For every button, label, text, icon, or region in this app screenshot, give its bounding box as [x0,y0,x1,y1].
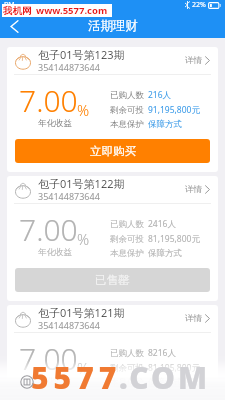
button[interactable]: 详情 [185,313,210,324]
staticText: 5577 [31,357,122,398]
button[interactable]: Back [0,14,28,38]
staticText: 保障方式 [148,248,182,259]
staticText: 我机网 [3,5,32,17]
staticText: 剩余可投 [110,234,144,245]
staticText: 354144873644 [38,61,100,73]
staticText: 包子01号第123期 [38,47,125,62]
staticText: 年化收益 [38,376,72,387]
button[interactable]: 包子01号第122期 [7,176,218,301]
staticText: 保障方式 [148,119,182,130]
staticText: 7.00 [19,80,78,121]
staticText: 本息保护 [110,377,144,388]
staticText: 本息保护 [110,248,144,259]
staticText: 已购人数 [110,90,144,101]
button[interactable]: 包子01号第121期 [7,305,218,400]
staticText: 保障方式 [148,377,182,388]
staticText: 详情 [185,55,202,66]
staticText: 已购人数 [110,219,144,230]
button[interactable]: 立即购买 [15,139,210,163]
staticText: 剩余可投 [110,105,144,116]
staticText: PM [4,0,15,10]
staticText: 216人 [148,89,172,101]
staticText: % [77,100,90,120]
staticText: 包子01号第122期 [38,176,125,191]
staticText: 立即购买 [90,144,136,158]
staticText: 年化收益 [38,247,72,258]
staticText: 本息保护 [110,119,144,130]
staticText: % [77,358,90,378]
staticText: 91,195,800元 [148,104,200,116]
staticText: 已售罄 [95,273,130,287]
staticText: 354144873644 [38,319,100,331]
staticText: % [77,229,90,249]
staticText: 81,195,800元 [148,233,200,245]
staticText: 7.00 [19,338,78,379]
staticText: 活期理财 [88,18,138,34]
staticText: 81,195,800元 [148,362,200,374]
staticText: www.5577.com [36,4,108,17]
staticText: 包子01号第121期 [38,305,125,320]
staticText: .COM [119,357,210,398]
staticText: 详情 [185,313,202,324]
staticText: 详情 [185,184,202,195]
button[interactable]: 详情 [185,184,210,195]
staticText: 年化收益 [38,118,72,129]
staticText: 已购人数 [110,348,144,359]
button[interactable]: 已售罄 [15,268,210,292]
button[interactable]: 包子01号第123期 [7,47,218,172]
staticText: 22% [192,0,206,10]
staticText: 7.00 [19,209,78,250]
staticText: 354144873644 [38,190,100,202]
staticText: 剩余可投 [110,363,144,374]
staticText: 2416人 [148,218,176,230]
staticText: 8216人 [148,347,176,359]
button[interactable]: 详情 [185,55,210,66]
